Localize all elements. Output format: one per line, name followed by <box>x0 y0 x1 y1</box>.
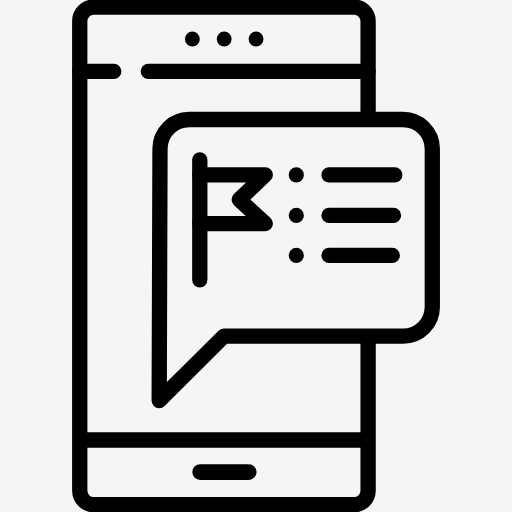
button[interactable]: Smartphone showing a flagged message wit… <box>0 0 512 512</box>
